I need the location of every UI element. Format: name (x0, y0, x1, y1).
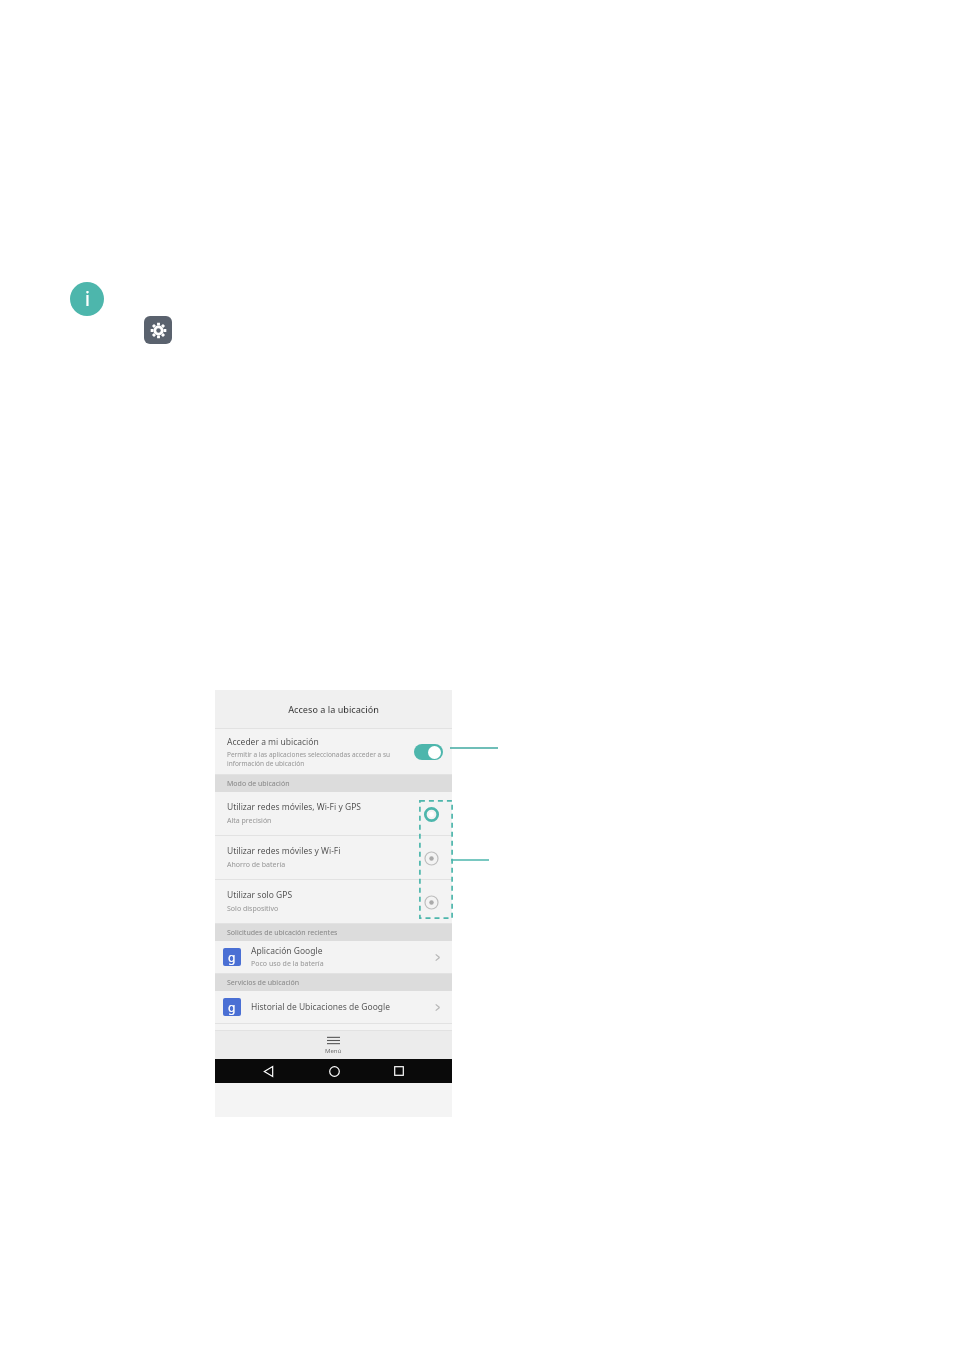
button[interactable]: Utilizar solo GPS (422, 893, 440, 911)
staticText: Poco uso de la batería (251, 959, 324, 969)
staticText: Solicitudes de ubicación recientes (227, 928, 338, 938)
staticText: Alta precisión (227, 816, 272, 826)
button[interactable]: Utilizar redes móviles y Wi-Fi (215, 836, 452, 879)
staticText: Historial de Ubicaciones de Google (251, 1001, 391, 1013)
button[interactable]: Settings (144, 316, 172, 344)
staticText: Acceso a la ubicación (288, 703, 379, 715)
button[interactable]: Acceder a mi ubicación (215, 729, 452, 774)
staticText: Solo dispositivo (227, 904, 279, 914)
staticText: i (85, 286, 90, 312)
staticText: Utilizar redes móviles, Wi-Fi y GPS (227, 801, 361, 813)
button[interactable]: Acceder a mi ubicación toggle (414, 744, 443, 760)
staticText: g (228, 999, 236, 1015)
staticText: Modo de ubicación (227, 779, 290, 789)
button[interactable]: Utilizar redes móviles, Wi-Fi y GPS (422, 805, 440, 823)
staticText: Permitir a las aplicaciones seleccionada… (227, 750, 397, 768)
staticText: Servicios de ubicación (227, 978, 300, 988)
button[interactable]: Back (256, 1059, 280, 1083)
staticText: Ahorro de batería (227, 860, 286, 870)
button[interactable]: Recents (387, 1059, 411, 1083)
staticText: Menú (325, 1047, 342, 1055)
button[interactable]: g (215, 991, 452, 1023)
staticText: Aplicación Google (251, 945, 323, 957)
button[interactable]: g (215, 941, 452, 973)
staticText: Utilizar redes móviles y Wi-Fi (227, 845, 341, 857)
button[interactable]: Home (322, 1059, 346, 1083)
button[interactable]: Information (70, 282, 104, 316)
staticText: g (228, 949, 236, 965)
button[interactable]: Menú (215, 1031, 452, 1059)
staticText: Utilizar solo GPS (227, 889, 293, 901)
button[interactable]: Utilizar redes móviles y Wi-Fi (422, 849, 440, 867)
button[interactable]: Utilizar redes móviles, Wi-Fi y GPS (215, 792, 452, 835)
button[interactable]: Utilizar solo GPS (215, 880, 452, 923)
staticText: Acceder a mi ubicación (227, 736, 319, 748)
